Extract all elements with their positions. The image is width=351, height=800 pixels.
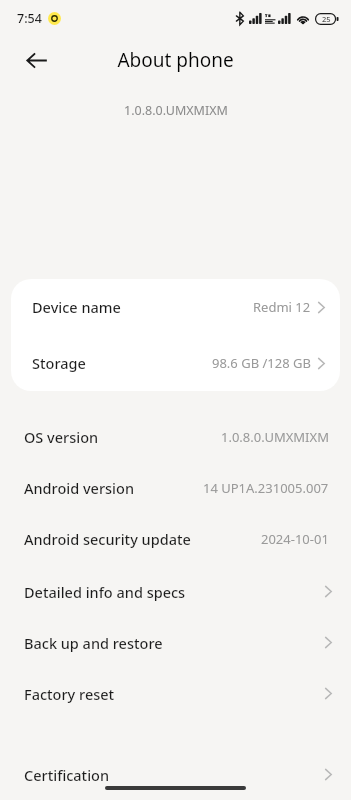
staticText: 7:54 (17, 10, 42, 27)
button[interactable]: Back up and restore (0, 617, 351, 668)
staticText: 1.0.8.0.UMXMIXM (221, 428, 329, 446)
staticText: Detailed info and specs (24, 582, 186, 602)
staticText: Android version (24, 478, 134, 498)
button[interactable]: Android version (0, 462, 351, 513)
staticText: Android security update (24, 529, 191, 549)
staticText: Device name (32, 297, 121, 317)
button[interactable]: Certification (0, 749, 351, 800)
staticText: Redmi 12 (253, 298, 311, 316)
staticText: Factory reset (24, 684, 115, 704)
staticText: 14 UP1A.231005.007 (203, 479, 329, 497)
staticText: Back up and restore (24, 633, 163, 653)
button[interactable]: Android security update (0, 513, 351, 564)
staticText: About phone (117, 47, 234, 73)
staticText: 25 (322, 14, 331, 24)
staticText: 98.6 GB /128 GB (212, 354, 311, 372)
button[interactable]: Back (14, 38, 58, 82)
button[interactable]: OS version (0, 411, 351, 462)
button[interactable]: Device name (11, 279, 340, 335)
staticText: Storage (32, 353, 86, 373)
staticText: Certification (24, 765, 110, 785)
staticText: 2024-10-01 (261, 530, 329, 548)
staticText: 1.0.8.0.UMXMIXM (124, 102, 228, 119)
button[interactable]: Detailed info and specs (0, 566, 351, 617)
button[interactable]: Storage (11, 335, 340, 391)
staticText: OS version (24, 427, 99, 447)
button[interactable]: Factory reset (0, 668, 351, 719)
